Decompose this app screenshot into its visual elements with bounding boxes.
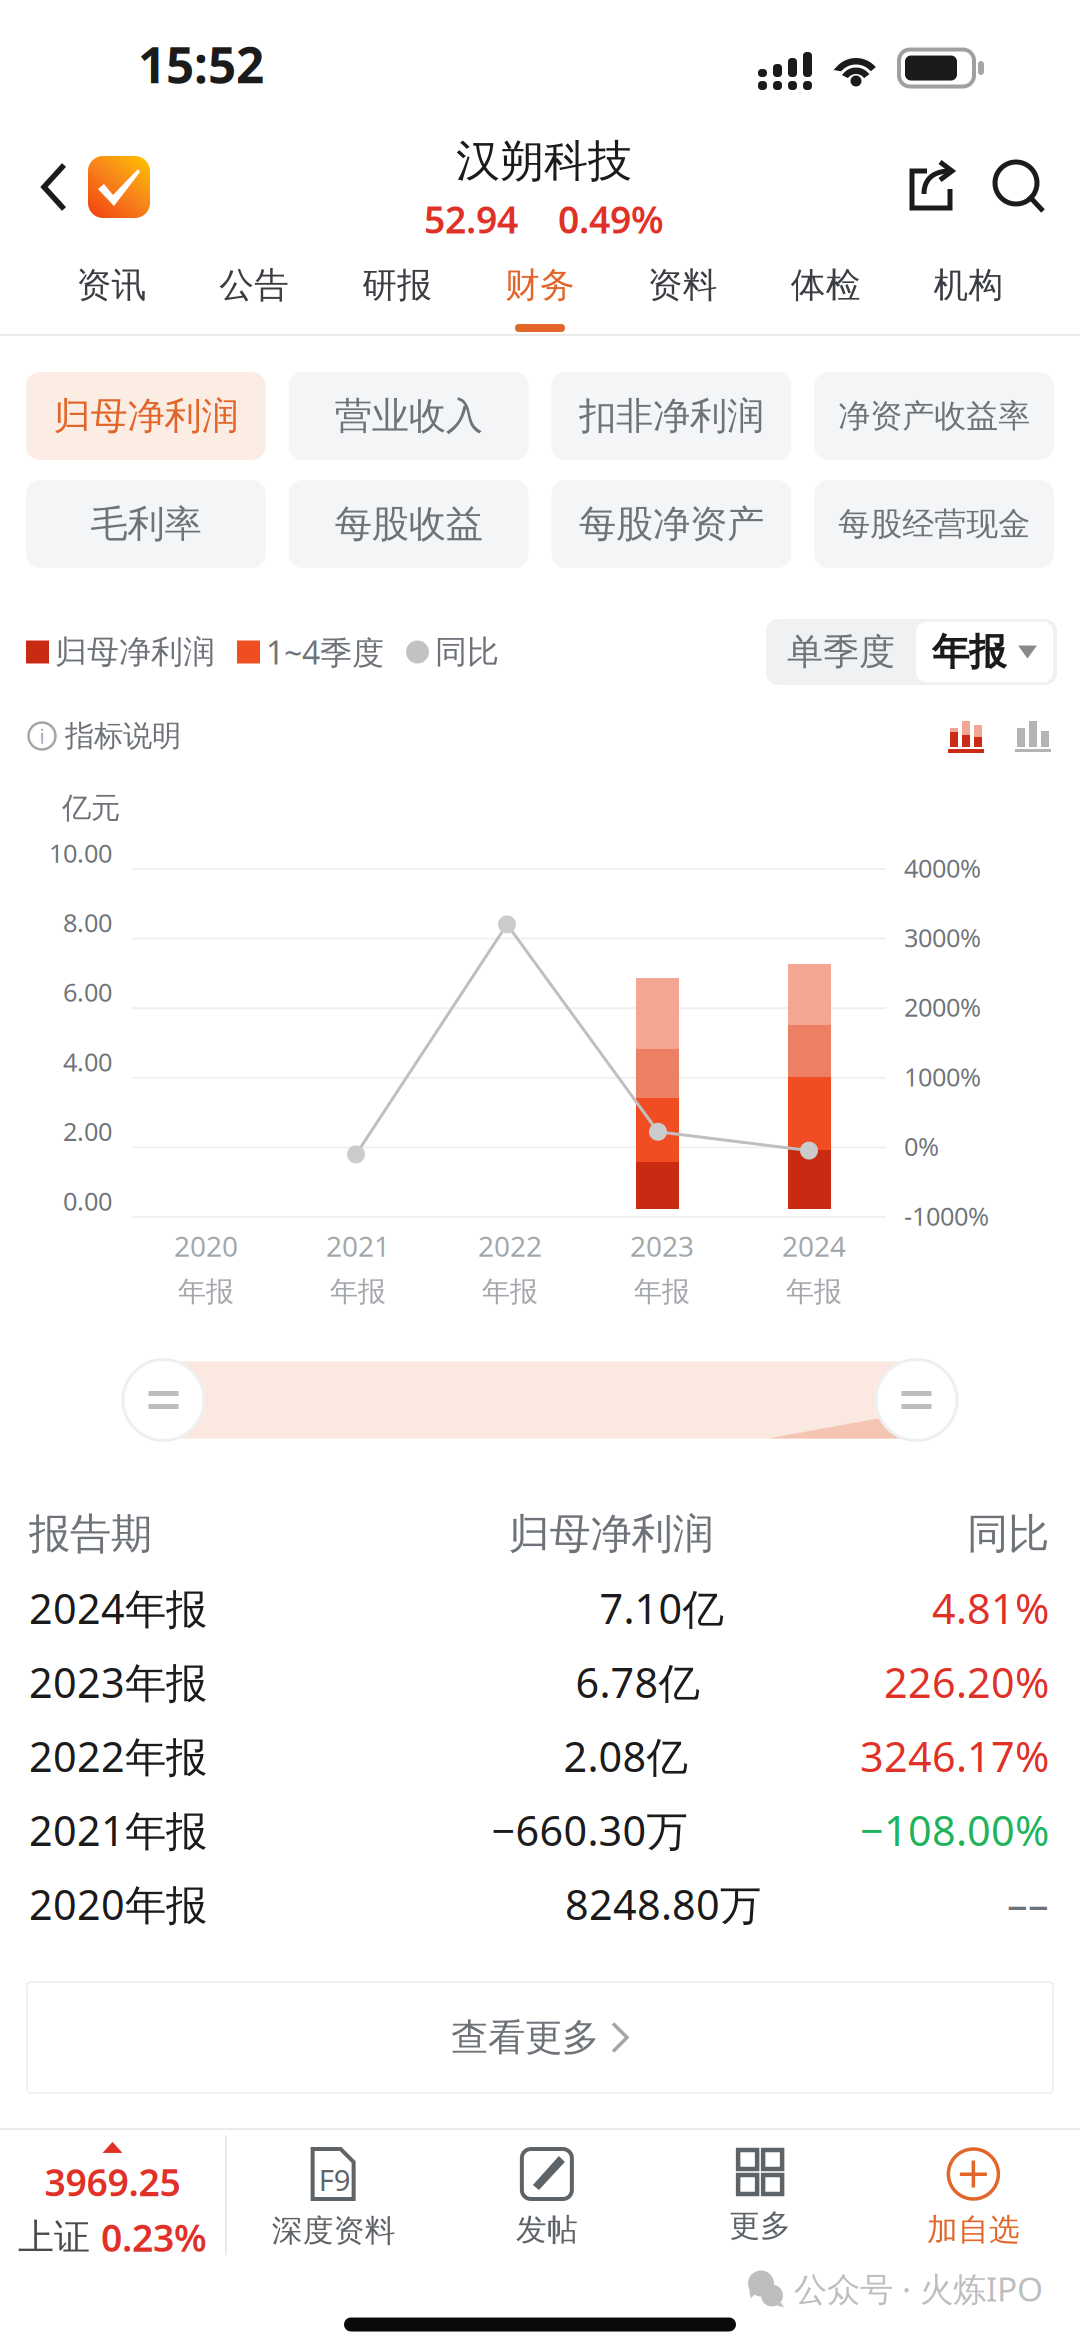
staticText: 2022年报 bbox=[29, 1729, 207, 1783]
staticText: 年报 bbox=[786, 1274, 842, 1309]
button[interactable]: 3969.25 bbox=[0, 2130, 225, 2260]
staticText: 汉朔科技 bbox=[456, 134, 632, 188]
button[interactable]: 公告 bbox=[183, 246, 326, 334]
staticText: 公告 bbox=[219, 264, 289, 307]
staticText: 8248.80万 bbox=[565, 1877, 761, 1931]
button[interactable]: 单季度 bbox=[766, 619, 916, 685]
staticText: 同比 bbox=[435, 632, 499, 672]
staticText: 52.94 bbox=[424, 194, 518, 244]
staticText: 1~4季度 bbox=[266, 631, 384, 673]
staticText: 发帖 bbox=[516, 2211, 578, 2249]
button[interactable]: Search bbox=[976, 128, 1064, 246]
staticText: 扣非净利润 bbox=[579, 393, 764, 439]
staticText: 2024 bbox=[782, 1227, 846, 1264]
staticText: 4.00 bbox=[63, 1045, 112, 1078]
staticText: 深度资料 bbox=[272, 2212, 396, 2250]
staticText: 报告期 bbox=[29, 1509, 152, 1559]
staticText: 资讯 bbox=[76, 264, 146, 307]
button[interactable]: 加自选 bbox=[867, 2130, 1080, 2260]
staticText: 每股收益 bbox=[335, 501, 483, 547]
button[interactable]: F9 bbox=[227, 2130, 440, 2260]
staticText: 资料 bbox=[648, 264, 718, 307]
button[interactable]: 查看更多 bbox=[27, 1982, 1053, 2093]
staticText: 2.08亿 bbox=[563, 1729, 687, 1783]
staticText: 体检 bbox=[791, 264, 861, 307]
staticText: 0.49% bbox=[558, 194, 664, 244]
button[interactable]: 资料 bbox=[611, 246, 754, 334]
staticText: F9 bbox=[319, 2160, 351, 2199]
staticText: 年报 bbox=[330, 1274, 386, 1309]
staticText: 2021 bbox=[326, 1227, 390, 1264]
staticText: 归母净利润 bbox=[55, 632, 215, 672]
staticText: 6.00 bbox=[63, 975, 112, 1009]
staticText: i bbox=[39, 723, 44, 749]
staticText: -1000% bbox=[904, 1199, 989, 1233]
button[interactable]: 归母净利润 bbox=[26, 372, 266, 460]
staticText: 查看更多 bbox=[451, 2015, 599, 2060]
button[interactable]: 每股经营现金 bbox=[814, 480, 1054, 568]
staticText: 2021年报 bbox=[29, 1803, 207, 1857]
staticText: 0.00 bbox=[63, 1184, 112, 1218]
staticText: −108.00% bbox=[860, 1803, 1049, 1857]
staticText: 财务 bbox=[505, 264, 575, 307]
button[interactable]: 体检 bbox=[754, 246, 897, 334]
staticText: 指标说明 bbox=[65, 718, 181, 754]
staticText: 公众号 · 火炼IPO bbox=[794, 2266, 1043, 2311]
staticText: 2023 bbox=[630, 1227, 694, 1264]
staticText: 7.10亿 bbox=[599, 1581, 723, 1635]
staticText: 4.81% bbox=[932, 1581, 1049, 1635]
staticText: 0.23% bbox=[101, 2212, 207, 2262]
button[interactable]: 每股收益 bbox=[289, 480, 529, 568]
button[interactable]: 更多 bbox=[653, 2130, 867, 2260]
staticText: 营业收入 bbox=[335, 393, 483, 439]
staticText: 归母净利润 bbox=[508, 1509, 713, 1559]
button[interactable]: 发帖 bbox=[440, 2130, 653, 2260]
staticText: 净资产收益率 bbox=[838, 396, 1030, 436]
staticText: –– bbox=[1007, 1877, 1049, 1931]
staticText: 年报 bbox=[932, 629, 1006, 675]
staticText: 亿元 bbox=[62, 790, 120, 826]
button[interactable]: i bbox=[28, 710, 181, 762]
button[interactable]: Bar chart bbox=[1015, 710, 1051, 762]
button[interactable]: 研报 bbox=[326, 246, 469, 334]
staticText: 15:52 bbox=[138, 31, 264, 97]
button[interactable]: 财务 bbox=[469, 246, 611, 334]
button[interactable]: 净资产收益率 bbox=[814, 372, 1054, 460]
staticText: 年报 bbox=[178, 1274, 234, 1309]
staticText: 2020年报 bbox=[29, 1877, 207, 1931]
staticText: 3246.17% bbox=[860, 1729, 1049, 1783]
staticText: 加自选 bbox=[927, 2211, 1020, 2249]
staticText: 6.78亿 bbox=[575, 1655, 699, 1709]
button[interactable]: Back bbox=[0, 128, 166, 246]
button[interactable]: 资讯 bbox=[40, 246, 183, 334]
button[interactable]: 扣非净利润 bbox=[551, 372, 791, 460]
staticText: 2020 bbox=[174, 1227, 238, 1264]
staticText: 归母净利润 bbox=[53, 393, 238, 439]
staticText: 同比 bbox=[967, 1509, 1049, 1559]
staticText: 3969.25 bbox=[44, 2157, 180, 2206]
staticText: 2024年报 bbox=[29, 1581, 207, 1635]
staticText: 3000% bbox=[904, 921, 981, 954]
button[interactable]: 年报 bbox=[916, 622, 1053, 682]
staticText: 0% bbox=[904, 1129, 939, 1163]
staticText: 每股经营现金 bbox=[838, 504, 1030, 544]
button[interactable]: 毛利率 bbox=[26, 480, 266, 568]
button[interactable]: 每股净资产 bbox=[551, 480, 791, 568]
staticText: 4000% bbox=[904, 851, 981, 885]
staticText: 1000% bbox=[904, 1060, 981, 1093]
staticText: 上证 bbox=[18, 2215, 90, 2259]
staticText: 更多 bbox=[729, 2207, 791, 2245]
button[interactable]: 机构 bbox=[897, 246, 1040, 334]
button[interactable]: Share bbox=[888, 128, 976, 246]
button[interactable]: Stacked bar chart bbox=[948, 710, 984, 762]
button[interactable]: 营业收入 bbox=[289, 372, 529, 460]
staticText: 研报 bbox=[362, 264, 432, 307]
staticText: 毛利率 bbox=[90, 501, 201, 547]
staticText: 2000% bbox=[904, 990, 981, 1024]
staticText: 2.00 bbox=[63, 1114, 112, 1148]
staticText: 8.00 bbox=[63, 906, 112, 939]
staticText: 2023年报 bbox=[29, 1655, 207, 1709]
staticText: 单季度 bbox=[787, 630, 895, 674]
staticText: 10.00 bbox=[49, 836, 112, 870]
staticText: −660.30万 bbox=[491, 1803, 687, 1857]
